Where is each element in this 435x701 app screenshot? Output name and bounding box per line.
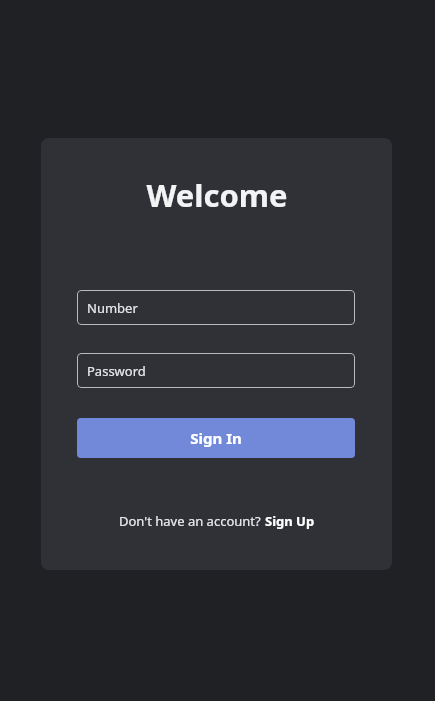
staticText: Sign In	[190, 428, 242, 448]
button[interactable]: Sign In	[77, 418, 355, 458]
button[interactable]: Sign Up	[265, 512, 315, 530]
staticText: Sign Up	[265, 512, 315, 530]
staticText: Password	[87, 362, 146, 380]
staticText: Number	[87, 299, 138, 317]
staticText: Welcome	[146, 174, 288, 216]
button[interactable]: Password	[77, 353, 355, 388]
button[interactable]: Number	[77, 290, 355, 325]
staticText: Don't have an account?	[119, 512, 265, 530]
